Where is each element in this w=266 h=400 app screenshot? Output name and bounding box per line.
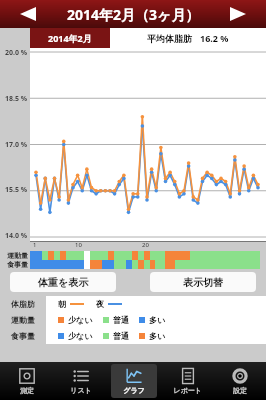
staticText: 測定 xyxy=(20,386,34,395)
button[interactable]: Next month xyxy=(220,3,256,25)
staticText: 少ない xyxy=(68,331,93,341)
staticText: 多い xyxy=(149,315,166,325)
button[interactable]: レポート xyxy=(160,362,213,400)
staticText: 2014年2月（3ヶ月） xyxy=(67,5,200,24)
button[interactable]: グラフ xyxy=(107,362,160,400)
staticText: 1 xyxy=(33,241,37,249)
button[interactable]: 体重を表示 xyxy=(10,272,116,292)
staticText: 20 xyxy=(142,241,149,249)
staticText: 18.5 % xyxy=(5,94,28,104)
staticText: 16.2 % xyxy=(200,32,229,44)
staticText: レポート xyxy=(173,386,202,395)
staticText: 少ない xyxy=(68,315,93,325)
button[interactable]: リスト xyxy=(54,362,107,400)
staticText: 設定 xyxy=(233,386,247,395)
staticText: グラフ xyxy=(123,386,145,395)
staticText: 2014年2月 xyxy=(48,32,92,44)
staticText: 多い xyxy=(149,331,166,341)
staticText: 食事量 xyxy=(11,331,35,341)
staticText: リスト xyxy=(70,386,92,395)
button[interactable]: Previous month xyxy=(10,3,46,25)
staticText: 体重を表示 xyxy=(38,276,89,289)
staticText: 普通 xyxy=(113,331,129,341)
button[interactable]: 測定 xyxy=(0,362,54,400)
staticText: 17.0 % xyxy=(5,140,28,150)
staticText: 平均体脂肪 xyxy=(147,33,192,44)
staticText: 15.5 % xyxy=(5,185,28,195)
button[interactable]: 2014年2月 xyxy=(30,28,110,48)
staticText: 14.0 % xyxy=(5,231,28,241)
button[interactable]: 設定 xyxy=(213,362,266,400)
staticText: 朝 xyxy=(58,299,66,309)
staticText: 夜 xyxy=(96,299,104,309)
staticText: 体脂肪 xyxy=(11,299,35,309)
staticText: 食事量 xyxy=(7,260,28,269)
staticText: 普通 xyxy=(113,315,129,325)
staticText: 運動量 xyxy=(11,315,35,325)
staticText: 運動量 xyxy=(7,251,28,260)
staticText: 表示切替 xyxy=(183,276,223,289)
staticText: 10 xyxy=(75,241,82,249)
staticText: 20.0 % xyxy=(5,48,28,58)
button[interactable]: 表示切替 xyxy=(150,272,256,292)
